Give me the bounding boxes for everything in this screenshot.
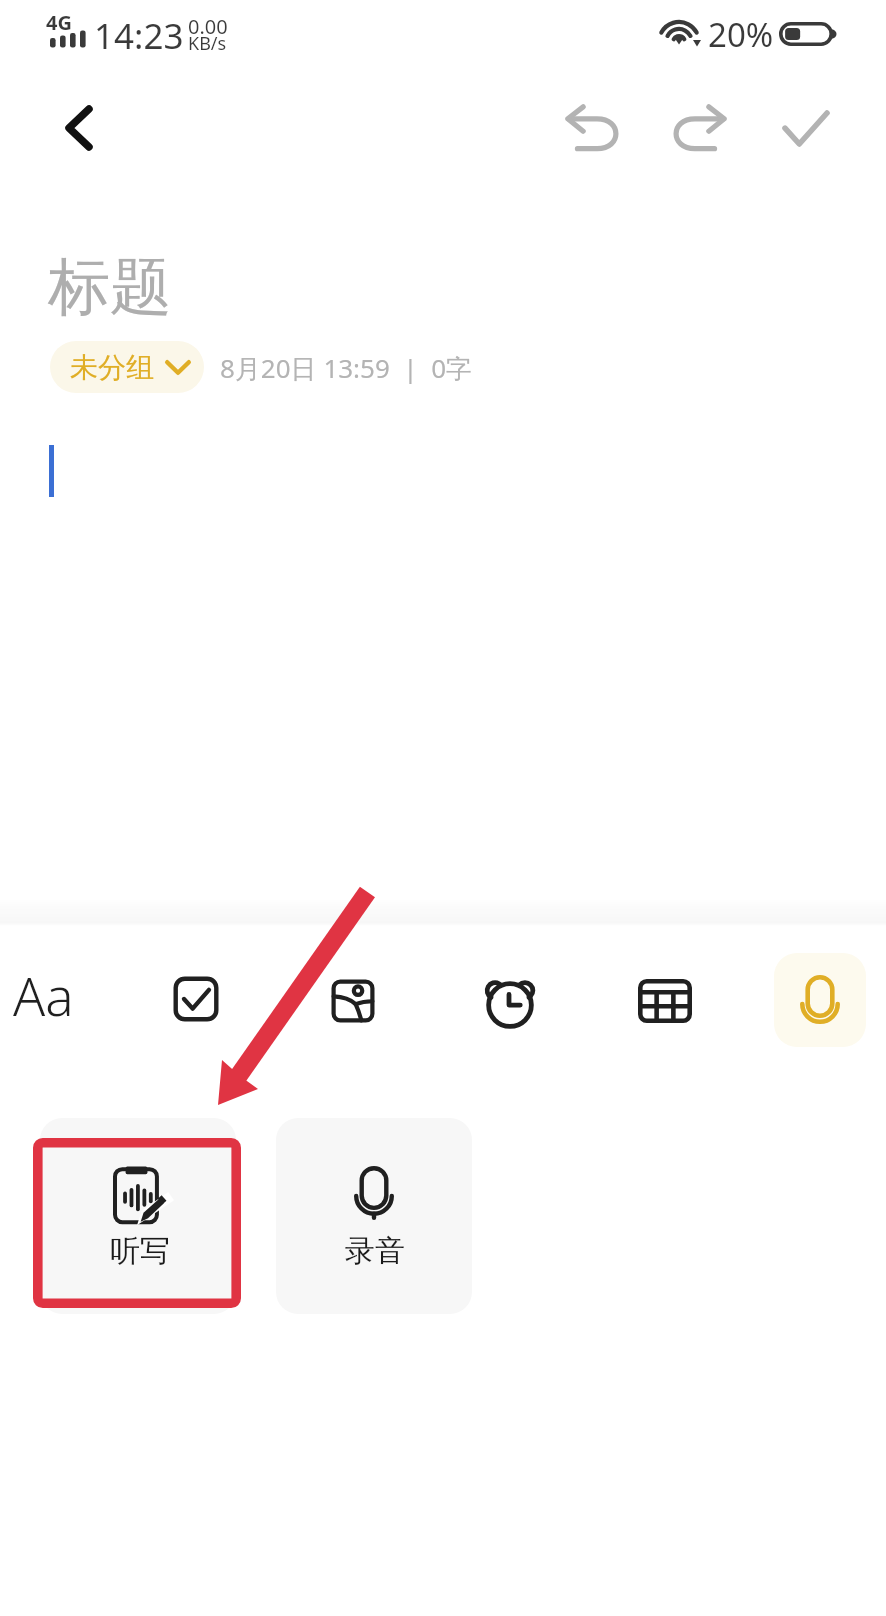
button[interactable]: Insert image [306,954,400,1048]
staticText: 0.00 [188,13,228,40]
staticText: 4G [46,9,72,36]
button[interactable]: Done [760,83,852,173]
button[interactable]: Back [34,84,124,172]
button[interactable]: 录音 [276,1118,472,1314]
staticText: 标题 [48,248,172,326]
button[interactable]: Reminder [463,954,557,1048]
staticText: 录音 [345,1232,405,1270]
button[interactable]: Table [618,954,712,1048]
button[interactable]: Voice input [774,953,866,1047]
staticText: 8月20日 13:59 | 0字 [220,350,473,386]
staticText: Aa [13,959,74,1031]
staticText: 听写 [110,1232,170,1270]
button[interactable]: Undo [546,83,638,173]
staticText: 未分组 [70,350,154,385]
button[interactable]: 听写 [40,1118,236,1314]
staticText: 14:23 [94,12,184,60]
button[interactable]: Redo [654,83,746,173]
button[interactable]: Text style [2,948,84,1042]
button[interactable]: Checklist [149,952,243,1046]
staticText: 20% [708,12,774,57]
button[interactable]: 未分组 [50,341,204,393]
staticText: KB/s [188,31,227,56]
